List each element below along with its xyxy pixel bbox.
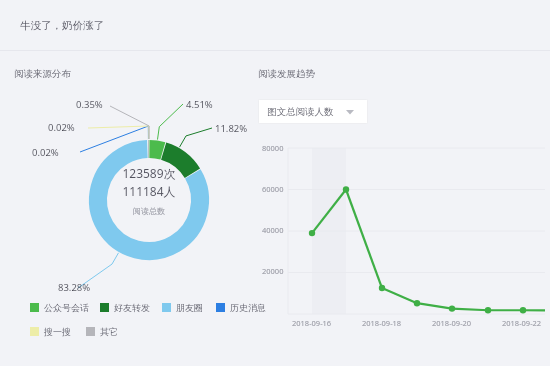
- staticText: 朋友圈: [176, 302, 203, 313]
- staticText: 阅读发展趋势: [258, 68, 315, 80]
- staticText: 11.82%: [215, 122, 248, 135]
- staticText: 111184人: [122, 183, 176, 199]
- staticText: 搜一搜: [44, 326, 71, 337]
- staticText: 83.28%: [58, 281, 91, 294]
- staticText: 2018-09-20: [432, 318, 472, 328]
- staticText: 123589次: [122, 165, 176, 181]
- staticText: 40000: [262, 225, 284, 235]
- button[interactable]: 公众号会话: [30, 302, 89, 313]
- button[interactable]: 其它: [86, 326, 118, 337]
- button[interactable]: 好友转发: [100, 302, 150, 313]
- staticText: 4.51%: [186, 98, 213, 111]
- button[interactable]: 历史消息: [216, 302, 266, 313]
- button[interactable]: 搜一搜: [30, 326, 71, 337]
- staticText: 图文总阅读人数: [267, 106, 334, 118]
- staticText: 20000: [262, 266, 284, 276]
- staticText: 2018-09-16: [292, 318, 332, 328]
- button[interactable]: 图文总阅读人数: [258, 99, 368, 124]
- staticText: 其它: [100, 326, 118, 337]
- staticText: 好友转发: [114, 302, 150, 313]
- button[interactable]: 牛没了，奶价涨了: [0, 0, 550, 50]
- staticText: 60000: [262, 184, 284, 194]
- button[interactable]: 朋友圈: [162, 302, 203, 313]
- staticText: 2018-09-18: [362, 318, 402, 328]
- staticText: 阅读来源分布: [14, 68, 71, 80]
- staticText: 2018-09-22: [502, 318, 542, 328]
- staticText: 0.02%: [32, 146, 59, 159]
- staticText: 80000: [262, 143, 284, 153]
- staticText: 历史消息: [230, 302, 266, 313]
- staticText: 0.35%: [76, 98, 103, 111]
- staticText: 阅读总数: [133, 206, 165, 216]
- staticText: 0.02%: [48, 121, 75, 134]
- staticText: 公众号会话: [44, 302, 89, 313]
- staticText: 牛没了，奶价涨了: [20, 19, 104, 32]
